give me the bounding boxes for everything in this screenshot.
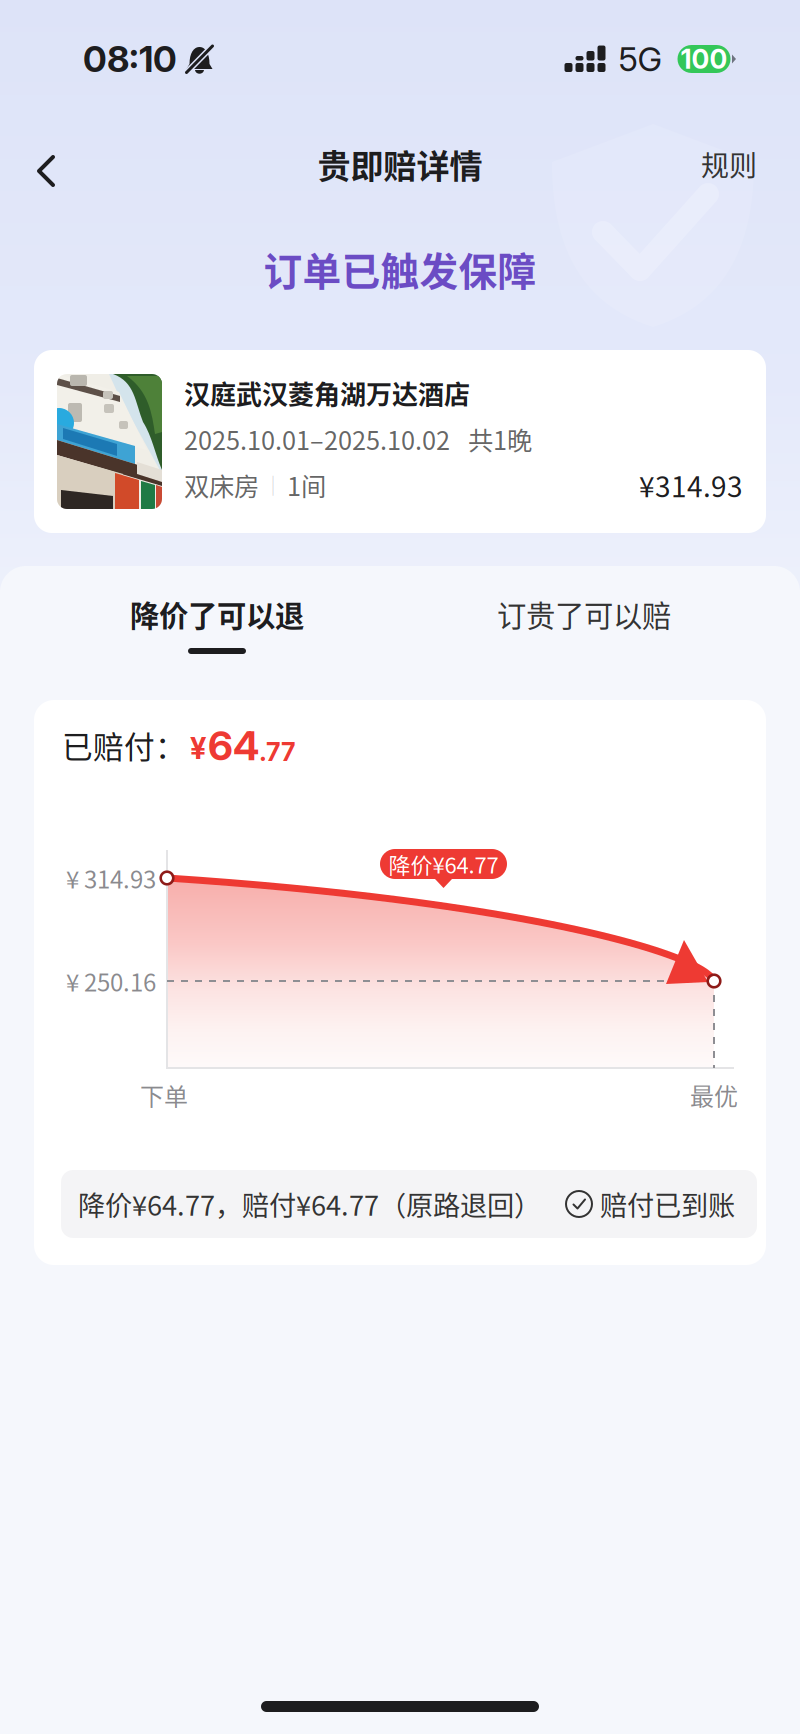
staticText: 规则 xyxy=(701,144,757,184)
staticText: 贵即赔详情 xyxy=(317,140,482,188)
staticText: 降价了可以退 xyxy=(130,593,304,635)
staticText: 汉庭武汉菱角湖万达酒店 xyxy=(184,374,470,412)
staticText: 08:10 xyxy=(83,37,177,81)
button[interactable]: 降价了可以退 xyxy=(0,596,434,686)
staticText: ¥314.93 xyxy=(639,465,743,505)
staticText: 订贵了可以赔 xyxy=(497,593,671,635)
staticText: 1间 xyxy=(287,467,326,503)
staticText: 2025.10.01–2025.10.02 共1晚 xyxy=(184,421,532,457)
staticText: 订单已触发保障 xyxy=(263,241,536,297)
staticText: 64 xyxy=(208,722,259,770)
staticText: 已赔付： xyxy=(62,723,186,767)
staticText: 降价¥64.77 xyxy=(388,848,498,880)
button[interactable]: 规则 xyxy=(669,118,789,210)
staticText: 下单 xyxy=(140,1078,188,1112)
staticText: ¥ 250.16 xyxy=(66,964,156,998)
button[interactable]: 订贵了可以赔 xyxy=(434,596,734,686)
staticText: ｜ xyxy=(259,470,287,499)
staticText: 最优 xyxy=(690,1078,738,1112)
staticText: ¥ 314.93 xyxy=(66,861,156,895)
staticText: 100 xyxy=(680,43,727,75)
staticText: .77 xyxy=(259,736,296,767)
staticText: 5G xyxy=(618,39,662,79)
staticText: 双床房 xyxy=(184,467,259,503)
staticText: 降价¥64.77，赔付¥64.77（原路退回） xyxy=(78,1184,541,1224)
staticText: 赔付已到账 xyxy=(600,1184,735,1224)
staticText: ¥ xyxy=(190,730,206,766)
button[interactable]: 返回 xyxy=(9,118,83,210)
